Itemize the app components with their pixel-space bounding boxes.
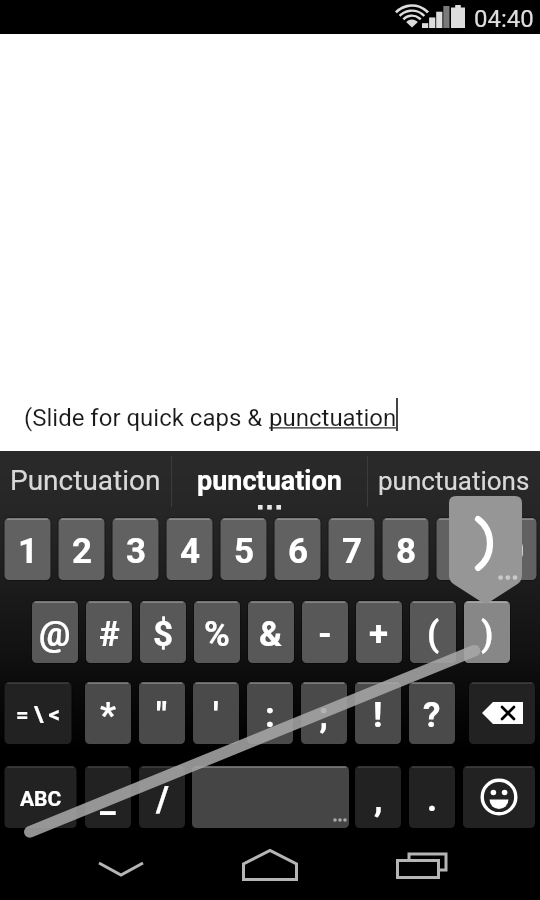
staticText: $ — [153, 614, 174, 655]
button[interactable]: , — [355, 766, 401, 828]
staticText: 3 — [126, 531, 147, 572]
button[interactable]: 9 — [437, 518, 483, 580]
staticText: punctuation — [197, 465, 342, 497]
staticText: 4 — [180, 531, 201, 572]
staticText: " — [156, 695, 168, 736]
button[interactable]: ( — [410, 601, 456, 663]
staticText: ' — [213, 695, 219, 736]
staticText: # — [99, 614, 120, 655]
button[interactable]: Home — [238, 846, 302, 888]
staticText: / — [156, 779, 169, 820]
button[interactable]: Punctuation — [0, 451, 171, 510]
button[interactable]: punctuations — [367, 451, 540, 510]
staticText: ABC — [20, 787, 62, 812]
button[interactable]: . — [409, 766, 455, 828]
button[interactable]: ! — [355, 682, 401, 744]
staticText: ( — [427, 614, 440, 655]
staticText: ? — [423, 695, 441, 736]
button[interactable]: 7 — [329, 518, 375, 580]
button[interactable]: _ — [85, 766, 131, 828]
button[interactable]: : — [247, 682, 293, 744]
staticText: punctuations — [378, 466, 530, 496]
staticText: ; — [319, 695, 329, 736]
button[interactable]: # — [86, 601, 132, 663]
staticText: @ — [39, 614, 71, 655]
staticText: (Slide for quick caps & — [24, 404, 269, 432]
button[interactable]: $ — [140, 601, 186, 663]
button[interactable]: ABC — [5, 766, 77, 828]
button[interactable]: ' — [193, 682, 239, 744]
staticText: 1 — [18, 531, 39, 572]
button[interactable]: - — [302, 601, 348, 663]
staticText: punctuation — [269, 404, 397, 432]
button[interactable]: * — [85, 682, 131, 744]
staticText: . — [427, 779, 438, 820]
button[interactable]: 1 — [5, 518, 51, 580]
button[interactable]: + — [356, 601, 402, 663]
button[interactable]: Recents — [388, 846, 452, 890]
button[interactable]: 4 — [167, 518, 213, 580]
button[interactable]: Space — [192, 766, 349, 828]
button[interactable]: 0 — [491, 518, 537, 580]
button[interactable]: = \ < — [5, 682, 72, 744]
button[interactable]: 5 — [221, 518, 267, 580]
staticText: 2 — [72, 531, 93, 572]
button[interactable]: 3 — [113, 518, 159, 580]
button[interactable]: 6 — [275, 518, 321, 580]
staticText: * — [100, 695, 116, 736]
staticText: _ — [100, 779, 116, 820]
staticText: , — [374, 779, 383, 820]
staticText: 6 — [288, 531, 309, 572]
button[interactable]: ? — [409, 682, 455, 744]
staticText: : — [265, 695, 275, 736]
staticText: ) — [481, 614, 494, 655]
button[interactable]: ; — [301, 682, 347, 744]
staticText: 7 — [342, 531, 363, 572]
button[interactable]: @ — [32, 601, 78, 663]
staticText: - — [318, 614, 332, 655]
staticText: Punctuation — [10, 464, 161, 497]
button[interactable]: 2 — [59, 518, 105, 580]
button[interactable]: / — [139, 766, 185, 828]
button[interactable]: % — [194, 601, 240, 663]
staticText: % — [204, 614, 230, 655]
staticText: ! — [373, 695, 383, 736]
staticText: 0 — [504, 531, 525, 572]
button[interactable]: punctuation — [171, 451, 367, 510]
button[interactable]: & — [248, 601, 294, 663]
staticText: 5 — [234, 531, 255, 572]
staticText: 04:40 — [474, 5, 534, 33]
button[interactable]: " — [139, 682, 185, 744]
staticText: = \ < — [16, 702, 61, 728]
button[interactable]: Emoji — [463, 766, 535, 828]
staticText: 8 — [396, 531, 417, 572]
staticText: + — [369, 614, 389, 655]
button[interactable]: Hide keyboard — [90, 856, 152, 886]
staticText: & — [259, 614, 283, 655]
button[interactable]: ) — [464, 601, 510, 663]
button[interactable]: Delete — [469, 682, 535, 744]
button[interactable]: 8 — [383, 518, 429, 580]
